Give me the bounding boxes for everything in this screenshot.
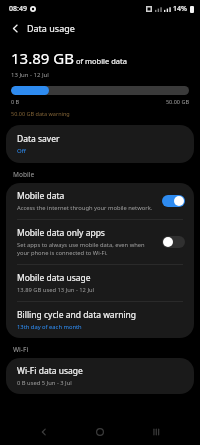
staticText: Mobile data [17,190,65,202]
staticText: 08:49 [9,4,27,14]
button[interactable]: Back [7,20,23,36]
staticText: 13 Jun - 12 Jul [11,71,49,79]
staticText: 13.89 GB [11,48,74,68]
button[interactable]: Mobile data only apps [6,220,194,264]
staticText: of mobile data [74,56,127,66]
button[interactable]: Billing cycle and data warning [6,302,194,338]
staticText: 14% [173,4,187,14]
staticText: Set apps to always use mobile data, even… [17,241,156,257]
staticText: 0 B used 5 Jun - 3 Jul [17,379,72,387]
button[interactable]: Toggle off [162,236,185,248]
staticText: Mobile data only apps [17,227,105,239]
button[interactable]: Mobile data [6,183,194,219]
button[interactable]: Data saver [6,125,194,163]
staticText: Billing cycle and data warning [17,309,137,321]
staticText: Data saver [17,133,60,145]
button[interactable]: Home [87,419,113,445]
button[interactable]: Wi-Fi data usage [6,358,194,394]
staticText: 50.00 GB data warning [11,110,70,117]
staticText: 0 B [11,98,20,105]
staticText: Wi-Fi data usage [17,365,83,377]
staticText: Off [17,147,26,155]
staticText: Data usage [27,22,75,34]
staticText: Mobile [13,170,35,179]
staticText: 50.00 GB [20,98,189,105]
button[interactable]: Mobile data usage [6,265,194,301]
staticText: Access the internet through your mobile … [17,204,153,212]
staticText: 13th day of each month [17,323,82,331]
button[interactable]: Back [31,419,57,445]
button[interactable]: Recents [144,419,170,445]
staticText: Mobile data usage [17,272,91,284]
button[interactable]: Toggle on [162,195,185,207]
staticText: Wi-Fi [13,345,29,354]
staticText: 13.89 GB used 13 Jun - 12 Jul [17,286,95,294]
